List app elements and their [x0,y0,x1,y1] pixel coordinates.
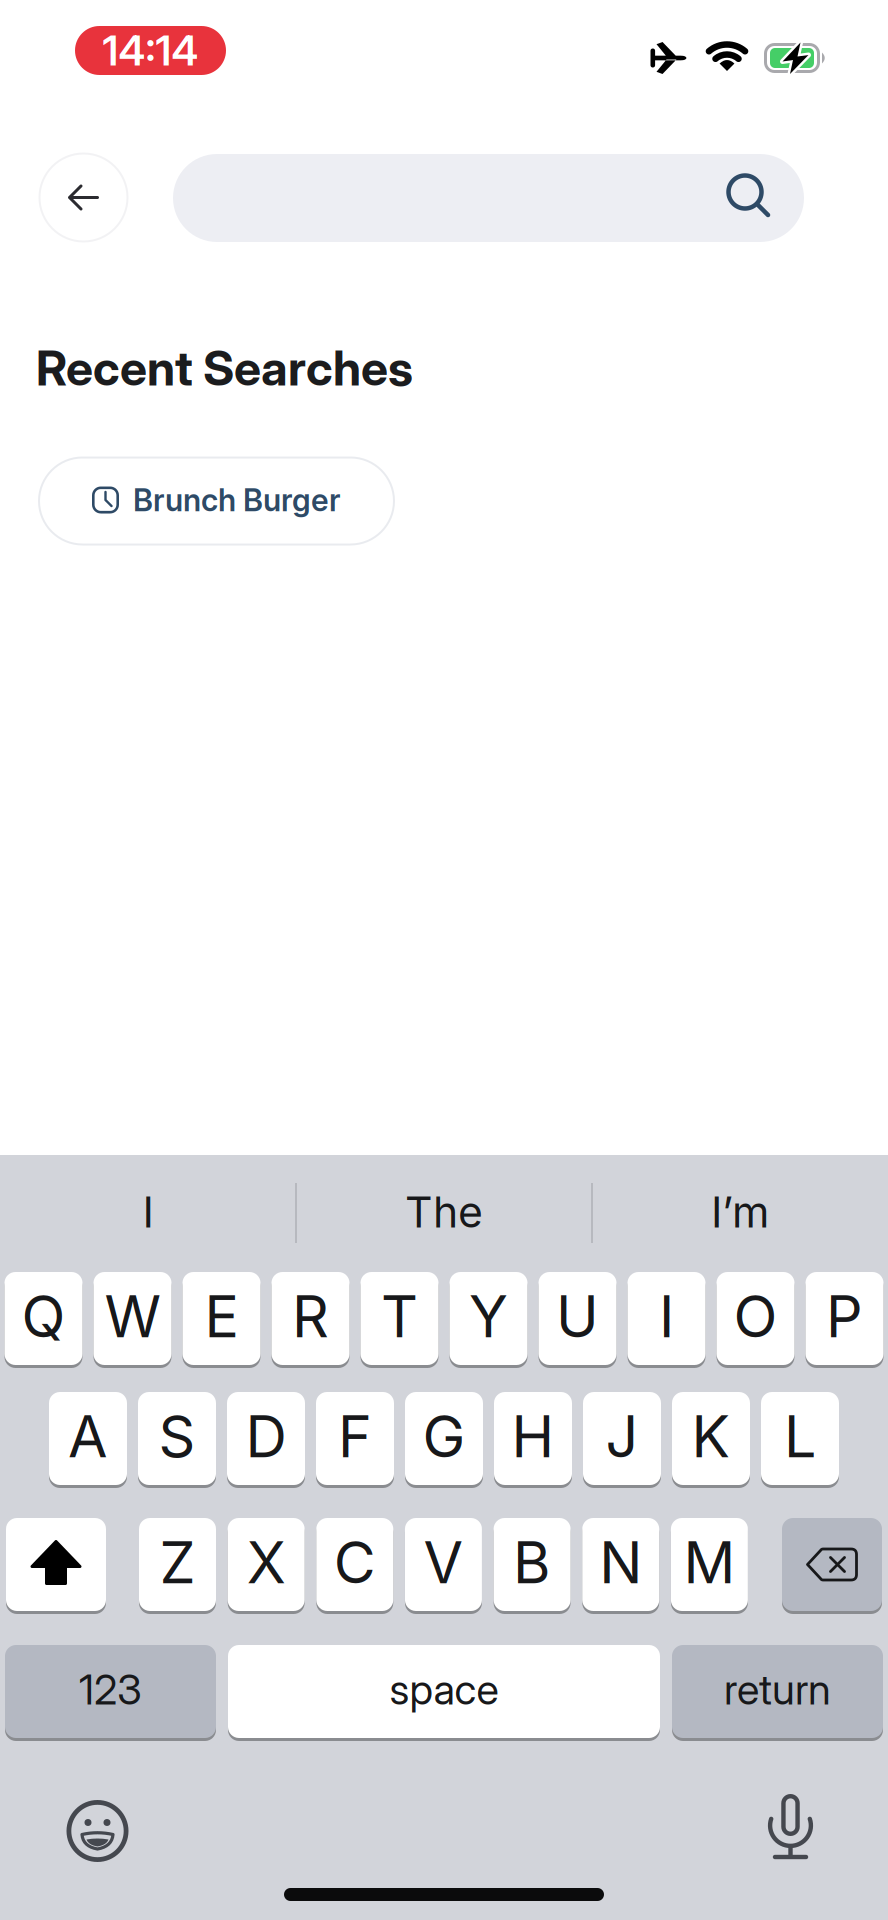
button[interactable]: return [672,1645,883,1740]
staticText: 14:14 [102,25,198,75]
staticText: E [204,1282,238,1351]
staticText: U [556,1282,599,1351]
staticText: Q [21,1282,65,1351]
button[interactable]: Y [449,1272,527,1367]
button[interactable]: H [494,1392,572,1487]
button[interactable]: Search [173,154,804,242]
button[interactable]: W [93,1272,171,1367]
staticText: T [381,1282,418,1351]
button[interactable]: space [228,1645,660,1740]
staticText: 123 [79,1664,142,1714]
staticText: Z [159,1528,195,1597]
staticText: I’m [711,1186,769,1238]
staticText: K [691,1402,730,1471]
staticText: I [142,1186,153,1238]
button[interactable]: Z [139,1518,216,1613]
button[interactable]: R [271,1272,349,1367]
button[interactable]: C [316,1518,393,1613]
staticText: P [826,1282,863,1351]
staticText: return [724,1664,831,1714]
button[interactable]: D [227,1392,305,1487]
staticText: D [245,1402,286,1471]
button[interactable]: I [627,1272,705,1367]
staticText: A [68,1402,108,1471]
button[interactable]: V [405,1518,482,1613]
staticText: L [784,1402,816,1471]
staticText: H [511,1402,554,1471]
staticText: C [334,1528,376,1597]
button[interactable]: E [182,1272,260,1367]
button[interactable]: Emoji [65,1799,129,1863]
button[interactable]: M [671,1518,748,1613]
button[interactable]: I [3,1157,293,1267]
button[interactable]: Brunch Burger [38,456,395,545]
staticText: R [292,1282,329,1351]
button[interactable]: N [582,1518,659,1613]
button[interactable]: L [761,1392,839,1487]
staticText: The [405,1186,483,1238]
staticText: space [389,1664,498,1714]
button[interactable]: Delete [782,1518,882,1613]
staticText: S [158,1402,195,1471]
button[interactable]: Dictate [765,1791,815,1863]
button[interactable]: I’m [595,1157,885,1267]
staticText: F [338,1402,372,1471]
button[interactable]: F [316,1392,394,1487]
staticText: M [683,1528,735,1597]
button[interactable]: Q [4,1272,82,1367]
staticText: J [605,1402,638,1471]
button[interactable]: X [228,1518,305,1613]
staticText: W [104,1282,160,1351]
staticText: X [247,1528,286,1597]
staticText: B [513,1528,551,1597]
staticText: O [733,1282,777,1351]
button[interactable]: Return to previous app [75,26,226,75]
button[interactable]: Back [38,152,128,242]
button[interactable]: B [494,1518,571,1613]
button[interactable]: The [299,1157,589,1267]
button[interactable]: A [49,1392,127,1487]
staticText: Y [469,1282,508,1351]
button[interactable]: K [672,1392,750,1487]
staticText: G [422,1402,465,1471]
staticText: V [423,1528,463,1597]
staticText: Brunch Burger [133,481,341,518]
button[interactable]: G [405,1392,483,1487]
button[interactable]: Shift [6,1518,106,1613]
staticText: N [599,1528,642,1597]
button[interactable]: 123 [5,1645,216,1740]
button[interactable]: S [138,1392,216,1487]
button[interactable]: U [538,1272,616,1367]
staticText: Recent Searches [36,339,413,397]
button[interactable]: T [360,1272,438,1367]
button[interactable]: P [805,1272,883,1367]
button[interactable]: J [583,1392,661,1487]
staticText: I [659,1282,674,1351]
button[interactable]: O [716,1272,794,1367]
